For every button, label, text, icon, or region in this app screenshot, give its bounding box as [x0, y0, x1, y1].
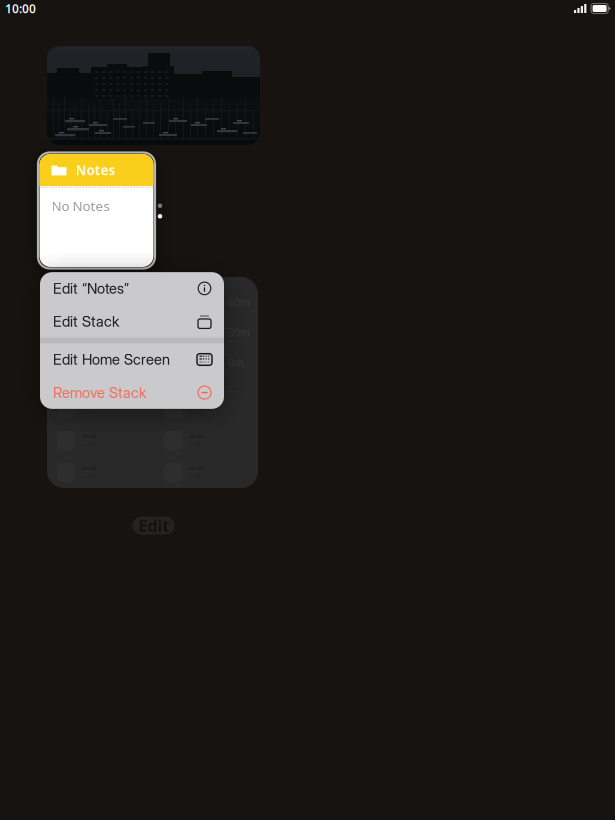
staticText: 60m — [228, 295, 250, 309]
button[interactable]: Edit — [132, 516, 174, 534]
staticText: Edit — [138, 515, 168, 536]
button[interactable]: Remove Stack — [40, 376, 224, 409]
staticText: No Notes — [51, 197, 109, 215]
staticText: 30m — [228, 325, 250, 339]
staticText: 10:00 — [5, 0, 36, 16]
staticText: Edit Home Screen — [53, 351, 170, 368]
staticText: Edit “Notes” — [53, 279, 129, 297]
button[interactable]: Edit “Notes” — [40, 272, 224, 305]
button[interactable]: Edit Stack — [40, 305, 224, 338]
staticText: Remove Stack — [53, 384, 146, 401]
button[interactable]: Edit Home Screen — [40, 343, 224, 376]
staticText: 0m — [228, 355, 244, 369]
staticText: Notes — [75, 161, 115, 179]
staticText: Edit Stack — [53, 313, 119, 330]
